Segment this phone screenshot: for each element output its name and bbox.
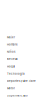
staticText: Hombre	[7, 43, 18, 46]
staticText: Niños	[7, 50, 15, 53]
staticText: Hogar	[7, 65, 15, 68]
staticText: Mujer	[7, 36, 15, 39]
staticText: Deportes y aire libre	[7, 79, 36, 83]
staticText: Supermercado	[7, 94, 28, 97]
staticText: Belleza	[7, 57, 17, 61]
staticText: Tecnología	[7, 72, 24, 75]
staticText: Motor	[7, 87, 15, 90]
